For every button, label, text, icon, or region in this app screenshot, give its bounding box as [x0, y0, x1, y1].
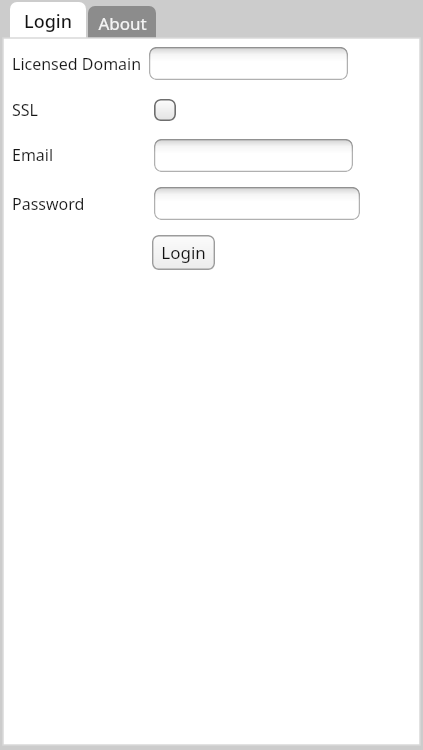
button[interactable] — [149, 47, 348, 80]
staticText: Login — [161, 241, 206, 264]
staticText: Email — [12, 144, 54, 166]
button[interactable]: Login — [152, 235, 215, 270]
button[interactable] — [154, 139, 353, 172]
staticText: Password — [12, 193, 85, 215]
staticText: About — [98, 12, 147, 35]
button[interactable]: Login — [10, 2, 86, 40]
button[interactable] — [154, 187, 360, 220]
staticText: Login — [24, 9, 72, 34]
button[interactable]: Enable SSL — [154, 99, 176, 121]
staticText: SSL — [12, 99, 38, 121]
button[interactable]: About — [88, 6, 156, 40]
staticText: Licensed Domain — [12, 53, 142, 75]
